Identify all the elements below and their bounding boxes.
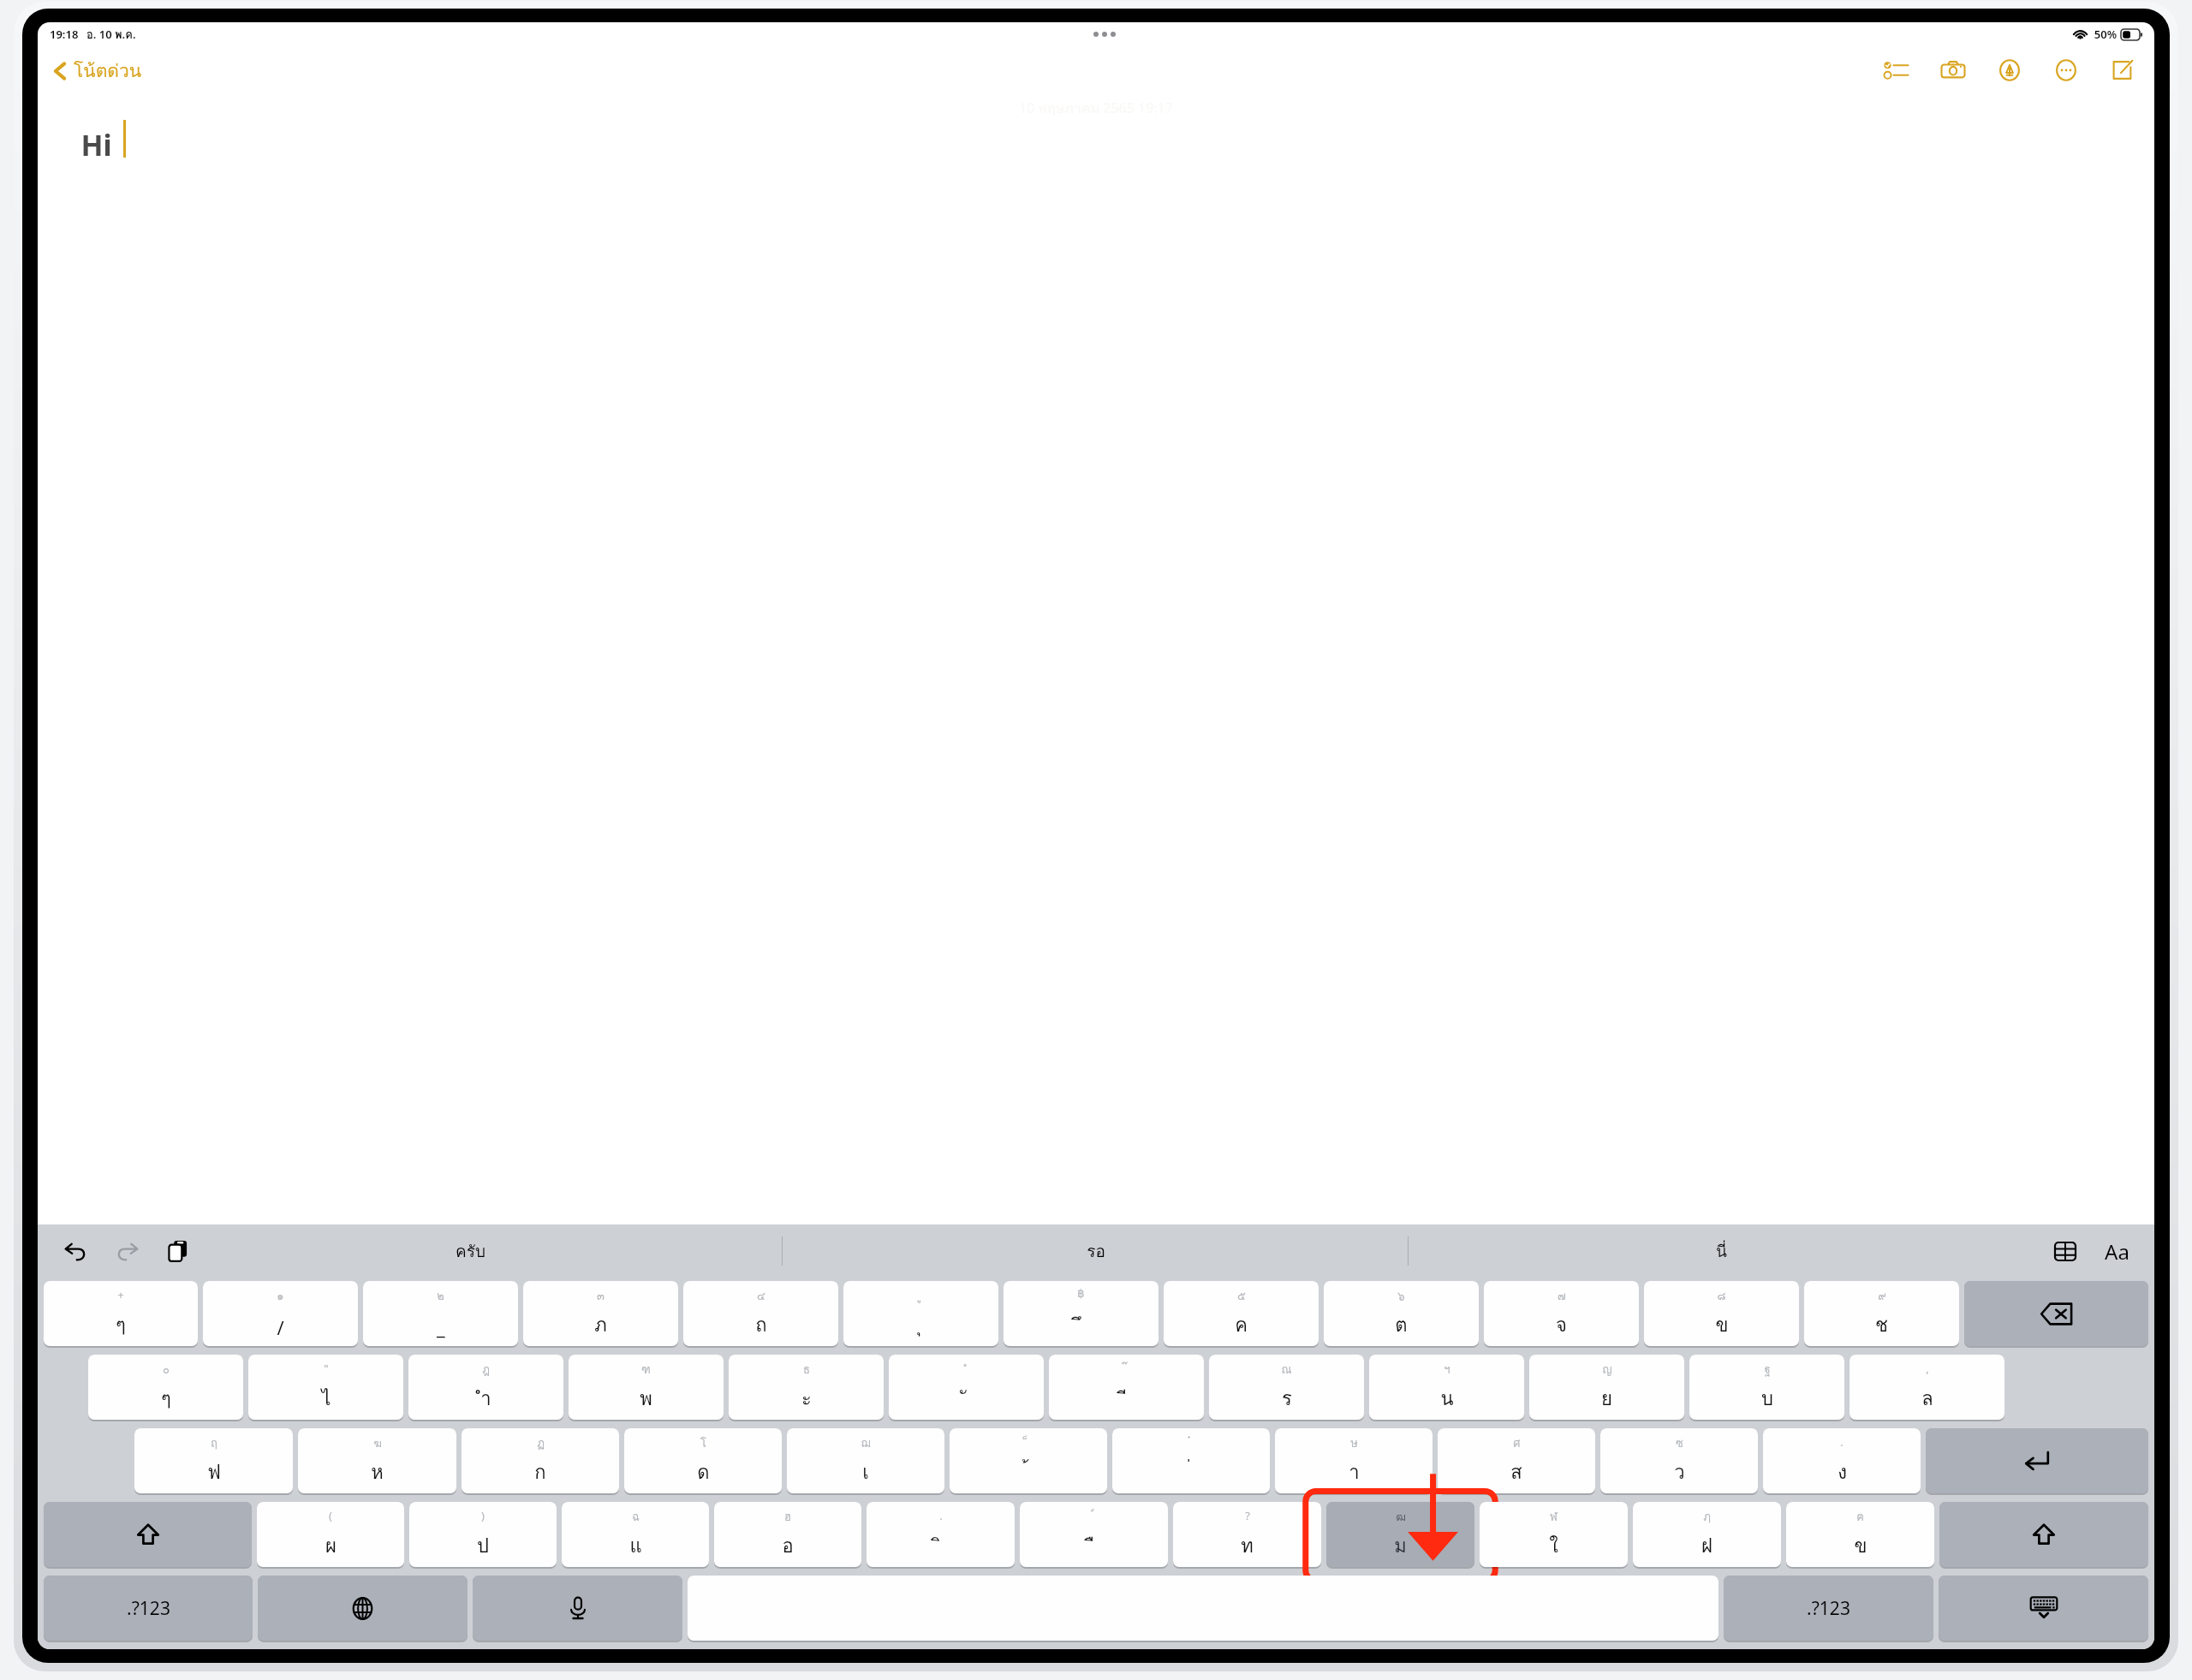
staticText: ภ [594,1310,607,1340]
button[interactable]: Paste [159,1232,197,1270]
staticText: ญ [1602,1361,1612,1379]
button[interactable]: .?123 [44,1576,253,1641]
staticText: ก [534,1457,546,1487]
staticText: ฬ [1550,1508,1558,1526]
button[interactable]: ฿ [1004,1281,1159,1346]
button[interactable]: ฎ [408,1355,563,1420]
button[interactable]: ฬ [1480,1502,1628,1567]
button[interactable]: ) [409,1502,557,1567]
button[interactable]: Backspace [1964,1281,2148,1346]
button[interactable]: Checklist [1880,54,1913,86]
button[interactable]: More options [2050,54,2082,86]
staticText: แ [629,1531,642,1561]
button[interactable]: Shift [1939,1502,2148,1567]
staticText: ย [1601,1384,1612,1414]
button[interactable]: โ [624,1428,782,1493]
button[interactable]: ฏ [462,1428,619,1493]
button[interactable]: ฅ [1786,1502,1934,1567]
button[interactable]: ์ [1020,1502,1168,1567]
button[interactable]: ็ [950,1428,1107,1493]
button[interactable]: ฤ [134,1428,293,1493]
button[interactable]: ํ [889,1355,1044,1420]
button[interactable]: ฌ [787,1428,944,1493]
button[interactable]: Next keyboard [258,1576,468,1641]
button[interactable]: Return [1926,1428,2148,1493]
button[interactable]: Dictation [473,1576,682,1641]
button[interactable]: ฦ [1633,1502,1781,1567]
staticText: Hi [80,125,112,164]
button[interactable]: ๋ [1112,1428,1270,1493]
button[interactable]: ? [1173,1502,1321,1567]
staticText: " [324,1361,329,1376]
button[interactable]: ฉ [562,1502,709,1567]
staticText: ฯ [1444,1361,1450,1379]
button[interactable]: ๘ [1644,1281,1799,1346]
staticText: ฮ [784,1508,791,1526]
button[interactable]: Insert table [2046,1232,2084,1270]
button[interactable]: Hide keyboard [1939,1576,2148,1641]
button[interactable]: ญ [1529,1355,1684,1420]
staticText: ต [1395,1310,1408,1340]
button[interactable]: ฒ [1326,1502,1474,1567]
staticText: ถ [755,1310,767,1340]
staticText: ด [697,1457,710,1487]
staticText: ะ [801,1384,812,1414]
button[interactable]: ๒ [363,1281,518,1346]
staticText: ฌ [861,1434,871,1452]
button[interactable]: , [1849,1355,2004,1420]
staticText: ๐ [163,1361,170,1379]
button[interactable]: ๔ [683,1281,838,1346]
staticText: ม [1394,1531,1407,1561]
button[interactable]: Camera [1937,54,1969,86]
button[interactable]: ครับ [158,1224,783,1278]
button[interactable]: .?123 [1724,1576,1933,1641]
staticText: . [1840,1434,1844,1450]
button[interactable]: ๕ [1164,1281,1319,1346]
button[interactable]: New note [2106,54,2139,86]
button[interactable]: ศ [1438,1428,1595,1493]
button[interactable]: Aa [2096,1230,2137,1272]
button[interactable]: ๐ [88,1355,243,1420]
button[interactable]: ฮ [714,1502,861,1567]
button[interactable]: " [248,1355,403,1420]
button[interactable]: ๓ [523,1281,678,1346]
button[interactable]: รอ [783,1224,1409,1278]
staticText: ซ [1676,1434,1683,1452]
button[interactable]: ๗ [1484,1281,1639,1346]
button[interactable]: ู [843,1281,998,1346]
button[interactable]: ฐ [1689,1355,1844,1420]
button[interactable]: ฯ [1369,1355,1524,1420]
button[interactable]: ๖ [1324,1281,1479,1346]
staticText: ธ [803,1361,810,1379]
button[interactable]: ซ [1600,1428,1758,1493]
staticText: ๘ [1717,1287,1726,1305]
button[interactable]: โน้ตด่วน [50,53,146,88]
staticText: ใ [1549,1531,1558,1561]
button[interactable]: ธ [729,1355,884,1420]
staticText: ฏ [537,1434,545,1452]
staticText: ร [1282,1384,1292,1414]
staticText: . [939,1508,943,1523]
staticText: 19:18 [50,27,79,42]
staticText: ง [1838,1457,1847,1487]
button[interactable]: ( [257,1502,404,1567]
staticText: ) [481,1508,485,1523]
button[interactable]: ษ [1275,1428,1433,1493]
button[interactable]: . [867,1502,1015,1567]
button[interactable]: ๊ [1049,1355,1204,1420]
staticText: ช [1875,1310,1888,1340]
button[interactable]: Markup [1993,54,2026,86]
button[interactable]: ๑ [203,1281,358,1346]
button[interactable]: ฑ [569,1355,724,1420]
button[interactable]: Redo [108,1232,146,1270]
button[interactable]: + [44,1281,198,1346]
staticText: Aa [2105,1237,2129,1266]
button[interactable]: . [1763,1428,1921,1493]
button[interactable]: นี่ [1409,1224,2034,1278]
button[interactable]: ณ [1209,1355,1364,1420]
button[interactable]: ฆ [298,1428,456,1493]
button[interactable]: ๙ [1804,1281,1959,1346]
button[interactable]: Undo [57,1232,94,1270]
button[interactable]: Shift [44,1502,252,1567]
